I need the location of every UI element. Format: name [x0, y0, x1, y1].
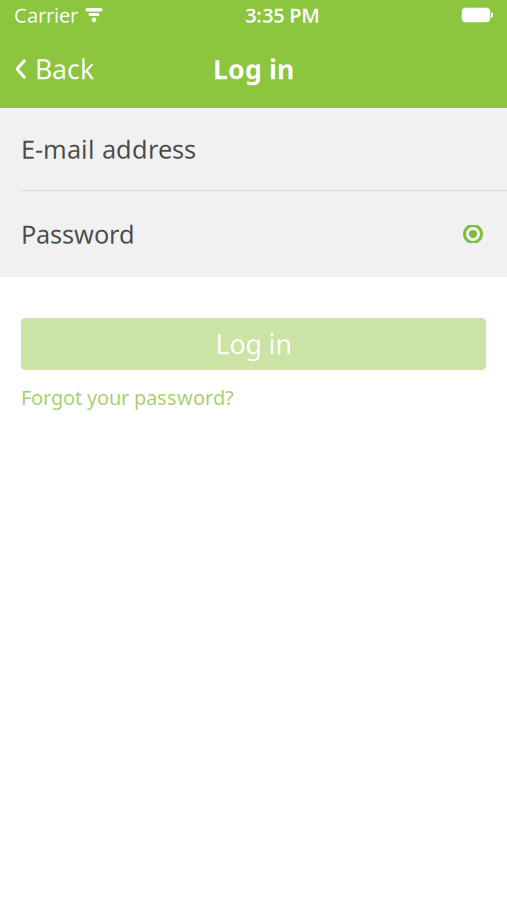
button[interactable]: Password [0, 191, 507, 277]
staticText: Log in [215, 326, 291, 362]
staticText: Forgot your password? [21, 384, 234, 411]
button[interactable]: Log in [21, 318, 486, 370]
button[interactable]: E-mail address [0, 108, 507, 190]
staticText: Carrier [14, 2, 78, 28]
staticText: E-mail address [21, 132, 196, 166]
staticText: Password [21, 217, 135, 251]
staticText: Back [35, 51, 94, 87]
staticText: Log in [213, 51, 294, 87]
button[interactable]: Back [0, 41, 104, 97]
staticText: 3:35 PM [245, 2, 320, 28]
button[interactable]: Forgot your password? [0, 370, 507, 417]
